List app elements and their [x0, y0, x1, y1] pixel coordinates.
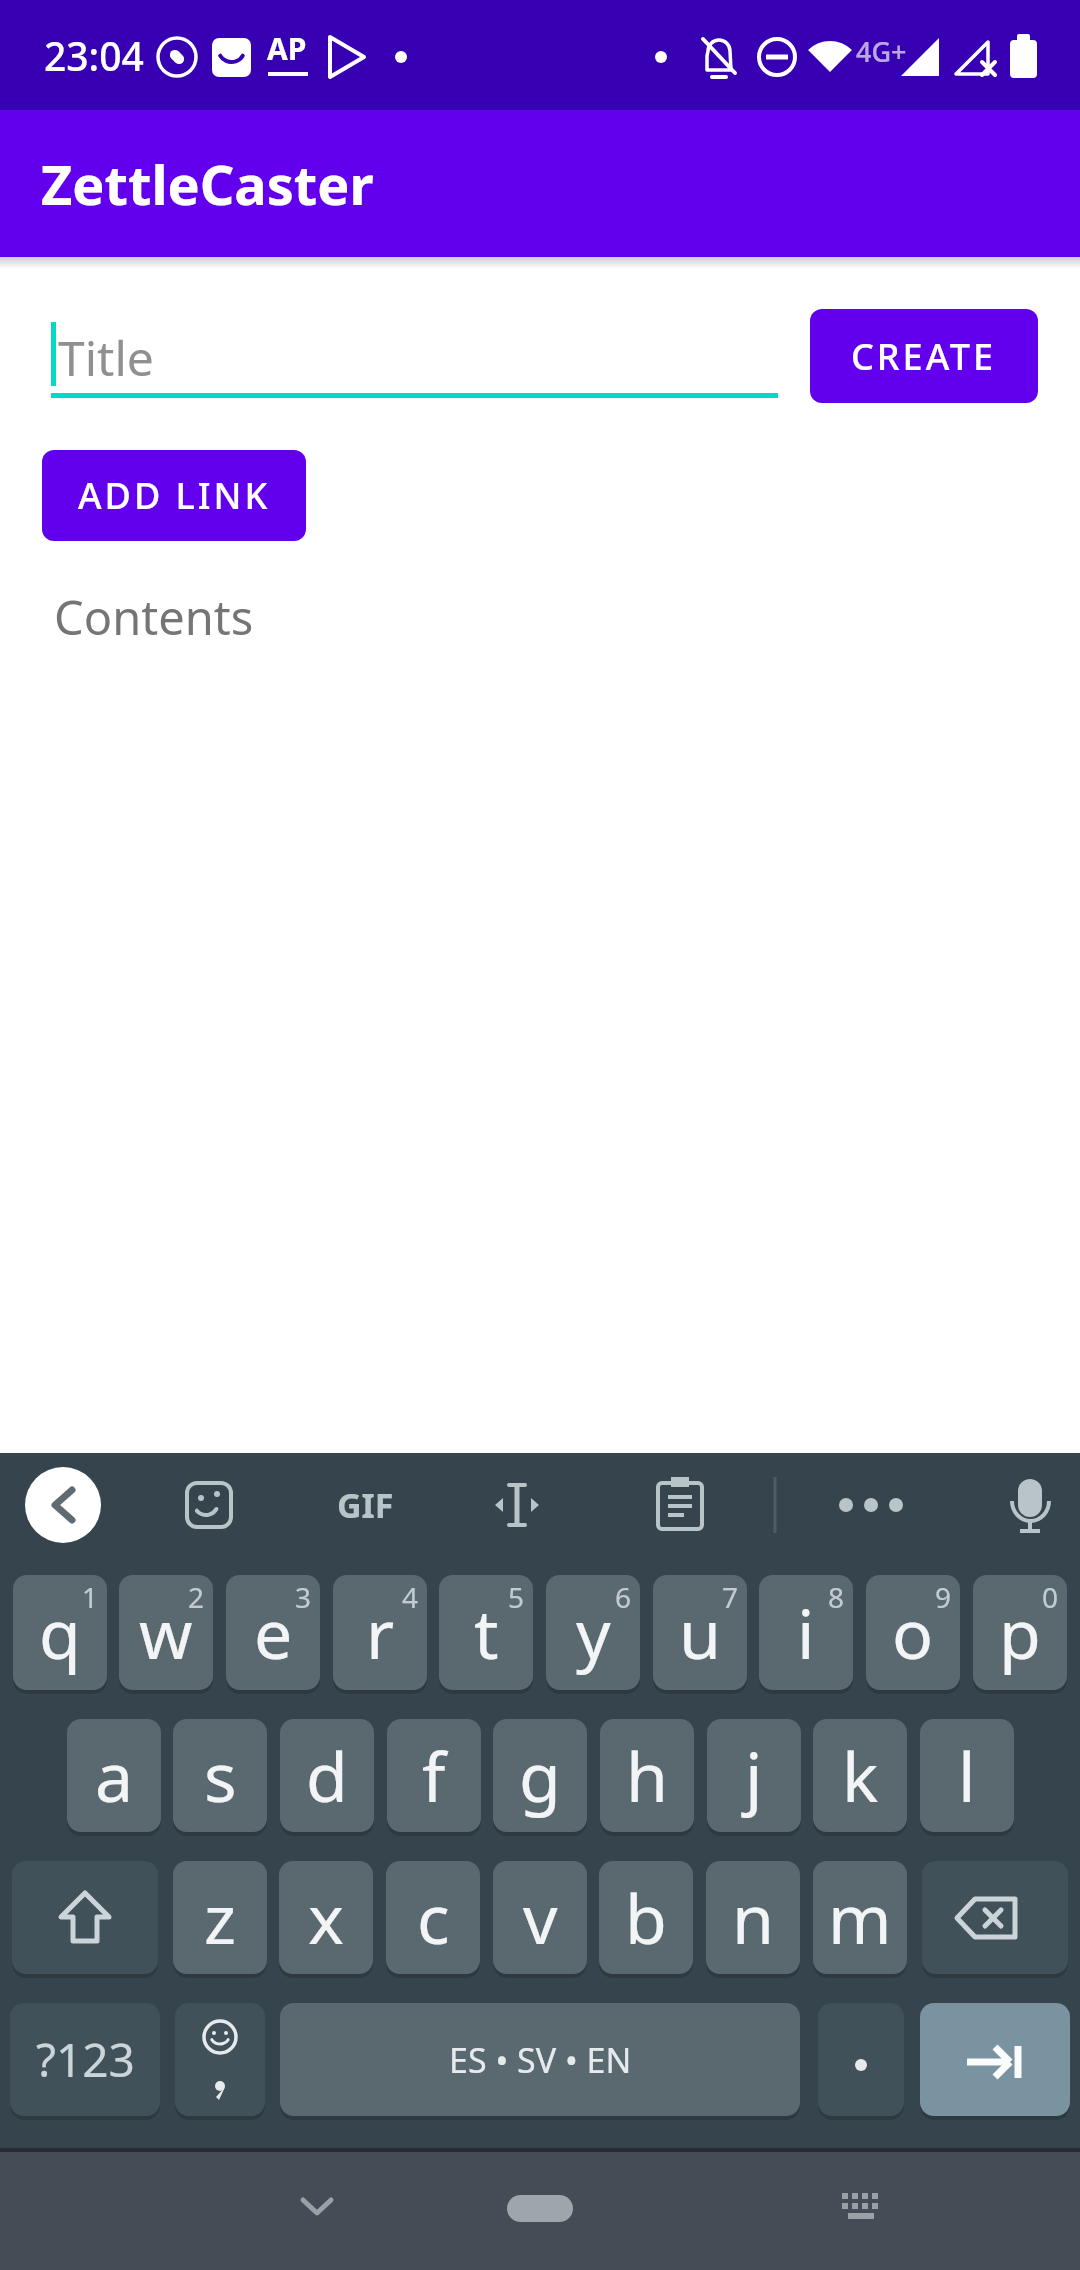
button[interactable]: l	[920, 1719, 1014, 1832]
staticText: ADD LINK	[78, 471, 271, 520]
staticText: CREATE	[851, 332, 997, 381]
button[interactable]	[920, 2003, 1070, 2116]
button[interactable]	[320, 1460, 410, 1550]
staticText: Contents	[54, 585, 254, 645]
staticText: g	[519, 1729, 561, 1822]
button[interactable]	[280, 2178, 354, 2240]
staticText: k	[842, 1729, 879, 1822]
staticText: 0	[1042, 1578, 1059, 1616]
staticText: v	[523, 1871, 558, 1964]
button[interactable]	[472, 1460, 562, 1550]
button[interactable]: CREATE	[810, 309, 1038, 403]
staticText: n	[732, 1871, 775, 1964]
button[interactable]: m	[813, 1861, 907, 1974]
staticText: 1	[82, 1578, 99, 1616]
button[interactable]	[503, 2178, 577, 2240]
button[interactable]	[635, 1460, 725, 1550]
staticText: 23:04	[44, 29, 144, 82]
button[interactable]: ADD LINK	[42, 450, 306, 541]
staticText: z	[204, 1871, 236, 1964]
button[interactable]: t	[439, 1575, 533, 1690]
staticText: 2	[188, 1578, 205, 1616]
staticText: u	[679, 1586, 722, 1679]
staticText: AP	[267, 28, 307, 69]
button[interactable]: k	[813, 1719, 907, 1832]
staticText: GIF	[337, 1482, 394, 1528]
button[interactable]: v	[493, 1861, 587, 1974]
staticText: 9	[935, 1578, 952, 1616]
button[interactable]	[175, 2003, 265, 2116]
button[interactable]: u	[653, 1575, 747, 1690]
staticText: 4	[402, 1578, 419, 1616]
button[interactable]: b	[599, 1861, 693, 1974]
staticText: s	[204, 1729, 237, 1822]
button[interactable]	[827, 1460, 917, 1550]
button[interactable]: e	[226, 1575, 320, 1690]
staticText: l	[958, 1729, 976, 1822]
button[interactable]: ?123	[10, 2003, 160, 2116]
staticText: 3	[295, 1578, 312, 1616]
staticText: j	[745, 1729, 763, 1822]
button[interactable]: o	[866, 1575, 960, 1690]
staticText: c	[417, 1871, 450, 1964]
staticText: e	[254, 1586, 293, 1679]
staticText: 5	[508, 1578, 525, 1616]
staticText: ZettleCaster	[41, 147, 374, 221]
staticText: o	[892, 1586, 934, 1679]
staticText: Title	[58, 325, 154, 385]
button[interactable]	[818, 2003, 904, 2116]
button[interactable]: p	[973, 1575, 1067, 1690]
staticText: h	[626, 1729, 669, 1822]
staticText: 6	[615, 1578, 632, 1616]
button[interactable]: x	[279, 1861, 373, 1974]
button[interactable]: h	[600, 1719, 694, 1832]
button[interactable]: q	[13, 1575, 107, 1690]
staticText: t	[474, 1586, 499, 1679]
button[interactable]: s	[173, 1719, 267, 1832]
staticText: b	[625, 1871, 667, 1964]
button[interactable]	[823, 2178, 897, 2240]
button[interactable]: a	[67, 1719, 161, 1832]
staticText: ES • SV • EN	[449, 2037, 632, 2083]
staticText: ?123	[36, 2028, 135, 2091]
staticText: i	[797, 1586, 815, 1679]
button[interactable]: f	[387, 1719, 481, 1832]
staticText: 8	[828, 1578, 845, 1616]
staticText: 4G+	[856, 33, 907, 70]
button[interactable]: y	[546, 1575, 640, 1690]
staticText: r	[366, 1586, 395, 1679]
button[interactable]	[164, 1460, 254, 1550]
button[interactable]: j	[707, 1719, 801, 1832]
staticText: a	[95, 1729, 134, 1822]
button[interactable]: z	[173, 1861, 267, 1974]
staticText: q	[39, 1586, 81, 1679]
button[interactable]: n	[706, 1861, 800, 1974]
staticText: p	[999, 1586, 1041, 1679]
button[interactable]	[12, 1861, 158, 1974]
button[interactable]: c	[386, 1861, 480, 1974]
staticText: f	[422, 1729, 446, 1822]
button[interactable]	[985, 1460, 1075, 1550]
button[interactable]: i	[759, 1575, 853, 1690]
staticText: d	[306, 1729, 348, 1822]
button[interactable]	[922, 1861, 1068, 1974]
staticText: m	[828, 1871, 892, 1964]
staticText: w	[139, 1586, 193, 1679]
button[interactable]: g	[493, 1719, 587, 1832]
button[interactable]: d	[280, 1719, 374, 1832]
button[interactable]: w	[119, 1575, 213, 1690]
button[interactable]	[18, 1460, 108, 1550]
button[interactable]: r	[333, 1575, 427, 1690]
staticText: x	[308, 1871, 344, 1964]
staticText: y	[576, 1586, 611, 1679]
button[interactable]: ES • SV • EN	[280, 2003, 800, 2116]
staticText: 7	[722, 1578, 739, 1616]
